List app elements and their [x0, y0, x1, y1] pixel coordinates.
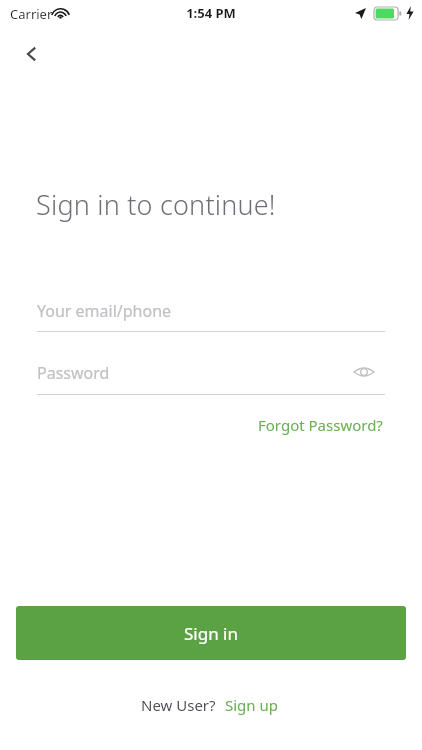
- button[interactable]: Sign up: [222, 692, 281, 718]
- button[interactable]: [36, 286, 386, 337]
- staticText: New User?: [141, 695, 216, 715]
- staticText: 1:54 PM: [186, 4, 236, 22]
- staticText: Sign in: [184, 622, 238, 645]
- button[interactable]: Forgot Password?: [250, 410, 391, 440]
- button[interactable]: [36, 348, 386, 400]
- button[interactable]: Show password: [348, 356, 380, 388]
- staticText: Forgot Password?: [258, 415, 383, 435]
- staticText: Password: [37, 362, 110, 384]
- staticText: Your email/phone: [37, 300, 172, 322]
- button[interactable]: Sign in: [16, 606, 406, 660]
- staticText: Carrier: [10, 5, 53, 23]
- staticText: Sign in to continue!: [36, 186, 276, 223]
- staticText: Sign up: [225, 695, 278, 715]
- button[interactable]: Back: [8, 30, 56, 78]
